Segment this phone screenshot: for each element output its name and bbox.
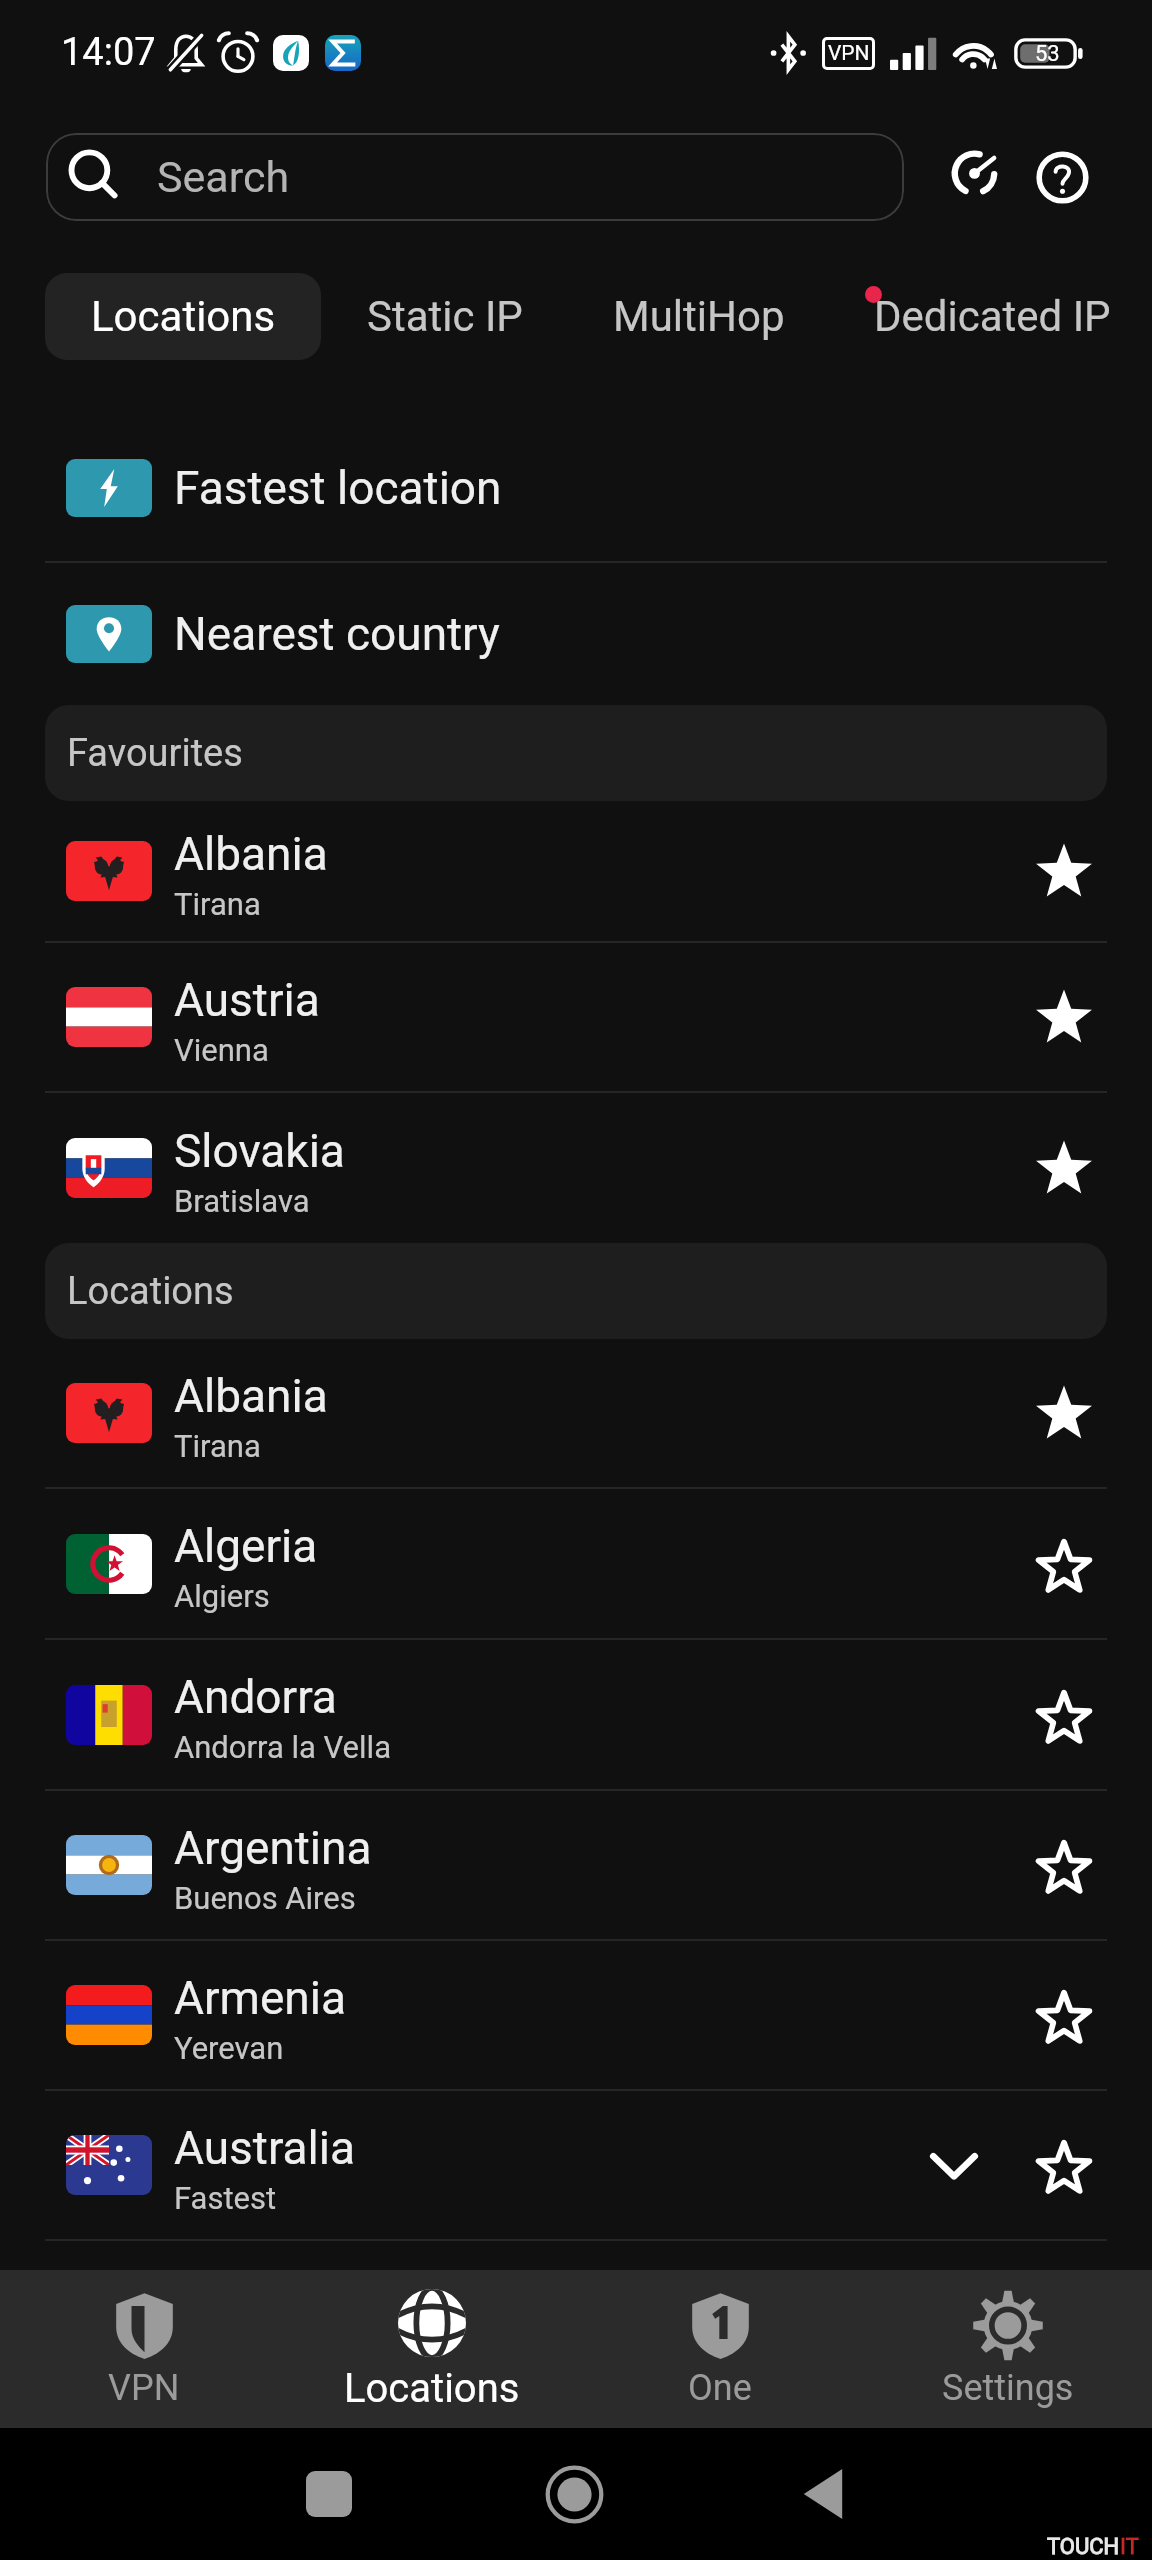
button[interactable]: Help	[1022, 137, 1102, 217]
button[interactable]: Argentina	[0, 1791, 1152, 1939]
staticText: Settings	[942, 2367, 1074, 2409]
staticText: One	[688, 2367, 752, 2409]
staticText: TOUCH	[1047, 2534, 1120, 2560]
staticText: Andorra	[174, 1670, 337, 1724]
button[interactable]: Back	[803, 2468, 843, 2520]
button[interactable]: Static IP	[321, 273, 569, 360]
button[interactable]: Slovakia	[0, 1093, 1152, 1243]
staticText: Buenos Aires	[174, 1880, 356, 1916]
button[interactable]: Home	[546, 2466, 603, 2523]
staticText: Locations	[91, 292, 276, 341]
staticText: Dedicated IP	[874, 292, 1111, 341]
button[interactable]: Remove favourite	[1021, 1370, 1107, 1456]
staticText: Albania	[174, 827, 328, 881]
staticText: 53	[1035, 41, 1060, 67]
staticText: Tirana	[174, 886, 261, 922]
button[interactable]: Dedicated IP	[829, 273, 1111, 360]
button[interactable]: Andorra	[0, 1640, 1152, 1789]
staticText: Locations	[344, 2365, 520, 2412]
staticText: Favourites	[67, 731, 243, 776]
staticText: Armenia	[174, 1971, 346, 2025]
staticText: Andorra la Vella	[174, 1729, 391, 1765]
button[interactable]: Algeria	[0, 1489, 1152, 1638]
staticText: 14:07	[61, 30, 156, 75]
button[interactable]: Armenia	[0, 1941, 1152, 2089]
button[interactable]: Locations	[288, 2270, 576, 2428]
staticText: Austria	[174, 973, 320, 1027]
staticText: Algeria	[174, 1519, 318, 1573]
staticText: VPN	[828, 41, 870, 66]
button[interactable]: Remove favourite	[1021, 974, 1107, 1060]
button[interactable]: Nearest country	[0, 563, 1152, 705]
button[interactable]: Add favourite	[1021, 1672, 1107, 1758]
button[interactable]: Add favourite	[1021, 2122, 1107, 2208]
button[interactable]: MultiHop	[569, 273, 829, 360]
staticText: VPN	[108, 2367, 180, 2409]
button[interactable]: One	[576, 2270, 864, 2428]
staticText: Fastest location	[174, 461, 502, 515]
button[interactable]: Australia	[0, 2091, 1152, 2239]
staticText: Vienna	[174, 1032, 269, 1068]
button[interactable]: Speed test	[934, 137, 1014, 217]
button[interactable]: Albania	[0, 801, 1152, 941]
staticText: Australia	[174, 2121, 356, 2175]
staticText: MultiHop	[613, 292, 785, 341]
staticText: Slovakia	[174, 1124, 345, 1178]
staticText: Bratislava	[174, 1183, 310, 1219]
staticText: Locations	[67, 1269, 234, 1314]
staticText: Algiers	[174, 1578, 270, 1614]
button[interactable]: Remove favourite	[1021, 828, 1107, 914]
staticText: IT	[1120, 2534, 1139, 2560]
staticText: Argentina	[174, 1821, 372, 1875]
staticText: Static IP	[367, 292, 523, 341]
staticText: Search	[157, 152, 290, 202]
staticText: Fastest	[174, 2180, 277, 2216]
button[interactable]: Recents	[306, 2471, 352, 2517]
staticText: Albania	[174, 1369, 328, 1423]
button[interactable]: Remove favourite	[1021, 1125, 1107, 1211]
staticText: Tirana	[174, 1428, 261, 1464]
button[interactable]: Locations	[45, 273, 321, 360]
button[interactable]: Austria	[0, 943, 1152, 1091]
button[interactable]: VPN	[0, 2270, 288, 2428]
button[interactable]: Search	[46, 133, 904, 221]
staticText: Yerevan	[174, 2030, 284, 2066]
button[interactable]: Add favourite	[1021, 1822, 1107, 1908]
button[interactable]: Add favourite	[1021, 1521, 1107, 1607]
button[interactable]: Fastest location	[0, 415, 1152, 561]
button[interactable]: Albania	[0, 1339, 1152, 1487]
button[interactable]: Settings	[864, 2270, 1152, 2428]
staticText: Nearest country	[174, 607, 500, 661]
button[interactable]: Add favourite	[1021, 1972, 1107, 2058]
button[interactable]: Expand	[909, 2120, 999, 2210]
